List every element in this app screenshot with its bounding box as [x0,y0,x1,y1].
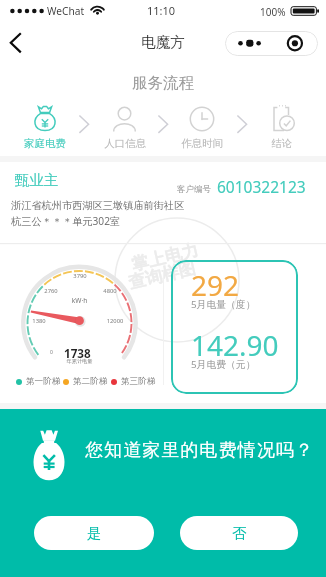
staticText: 您知道家里的电费情况吗？ [85,439,315,462]
staticText: 292 [191,266,240,304]
staticText: 5月电量（度） [191,298,256,311]
staticText: 1738 [64,345,91,361]
staticText: kW·h [58,296,101,305]
staticText: 电魔方 [0,33,326,51]
staticText: 浙江省杭州市西湖区三墩镇庙前街社区 [11,199,185,212]
staticText: 作息时间 [162,137,242,150]
staticText: 2760 [31,287,71,295]
staticText: 杭三公＊＊＊单元302室 [11,214,121,228]
staticText: 4800 [90,287,130,295]
button[interactable]: 否 [180,516,298,550]
staticText: 掌上电力 [129,240,200,275]
staticText: 0 [50,349,53,356]
staticText: 11:10 [147,3,176,18]
staticText: 142.90 [191,326,279,364]
staticText: 服务流程 [0,73,326,93]
staticText: 人口信息 [85,137,165,150]
staticText: WeChat [47,4,85,18]
staticText: 12000 [95,317,135,325]
staticText: 1380 [19,317,59,325]
staticText: 结论 [242,137,322,150]
staticText: 家庭电费 [5,137,85,150]
staticText: 第一阶梯 [26,376,61,387]
staticText: 100% [260,5,286,19]
staticText: 第二阶梯 [73,376,108,387]
staticText: 年累计电量 [58,358,101,365]
staticText: 甄业主 [15,171,59,189]
button[interactable]: 是 [34,516,154,550]
staticText: 5月电费（元） [191,358,256,371]
staticText: 6010322123 [217,176,306,197]
button[interactable]: Back [2,26,34,58]
staticText: 3790 [60,272,100,280]
staticText: 第三阶梯 [121,376,156,387]
staticText: 查询样图 [126,258,197,293]
staticText: 否 [232,524,247,542]
button[interactable]: 292 [171,260,298,394]
staticText: 客户编号 [177,184,211,195]
button[interactable]: More options [225,31,318,56]
staticText: 是 [87,524,102,542]
